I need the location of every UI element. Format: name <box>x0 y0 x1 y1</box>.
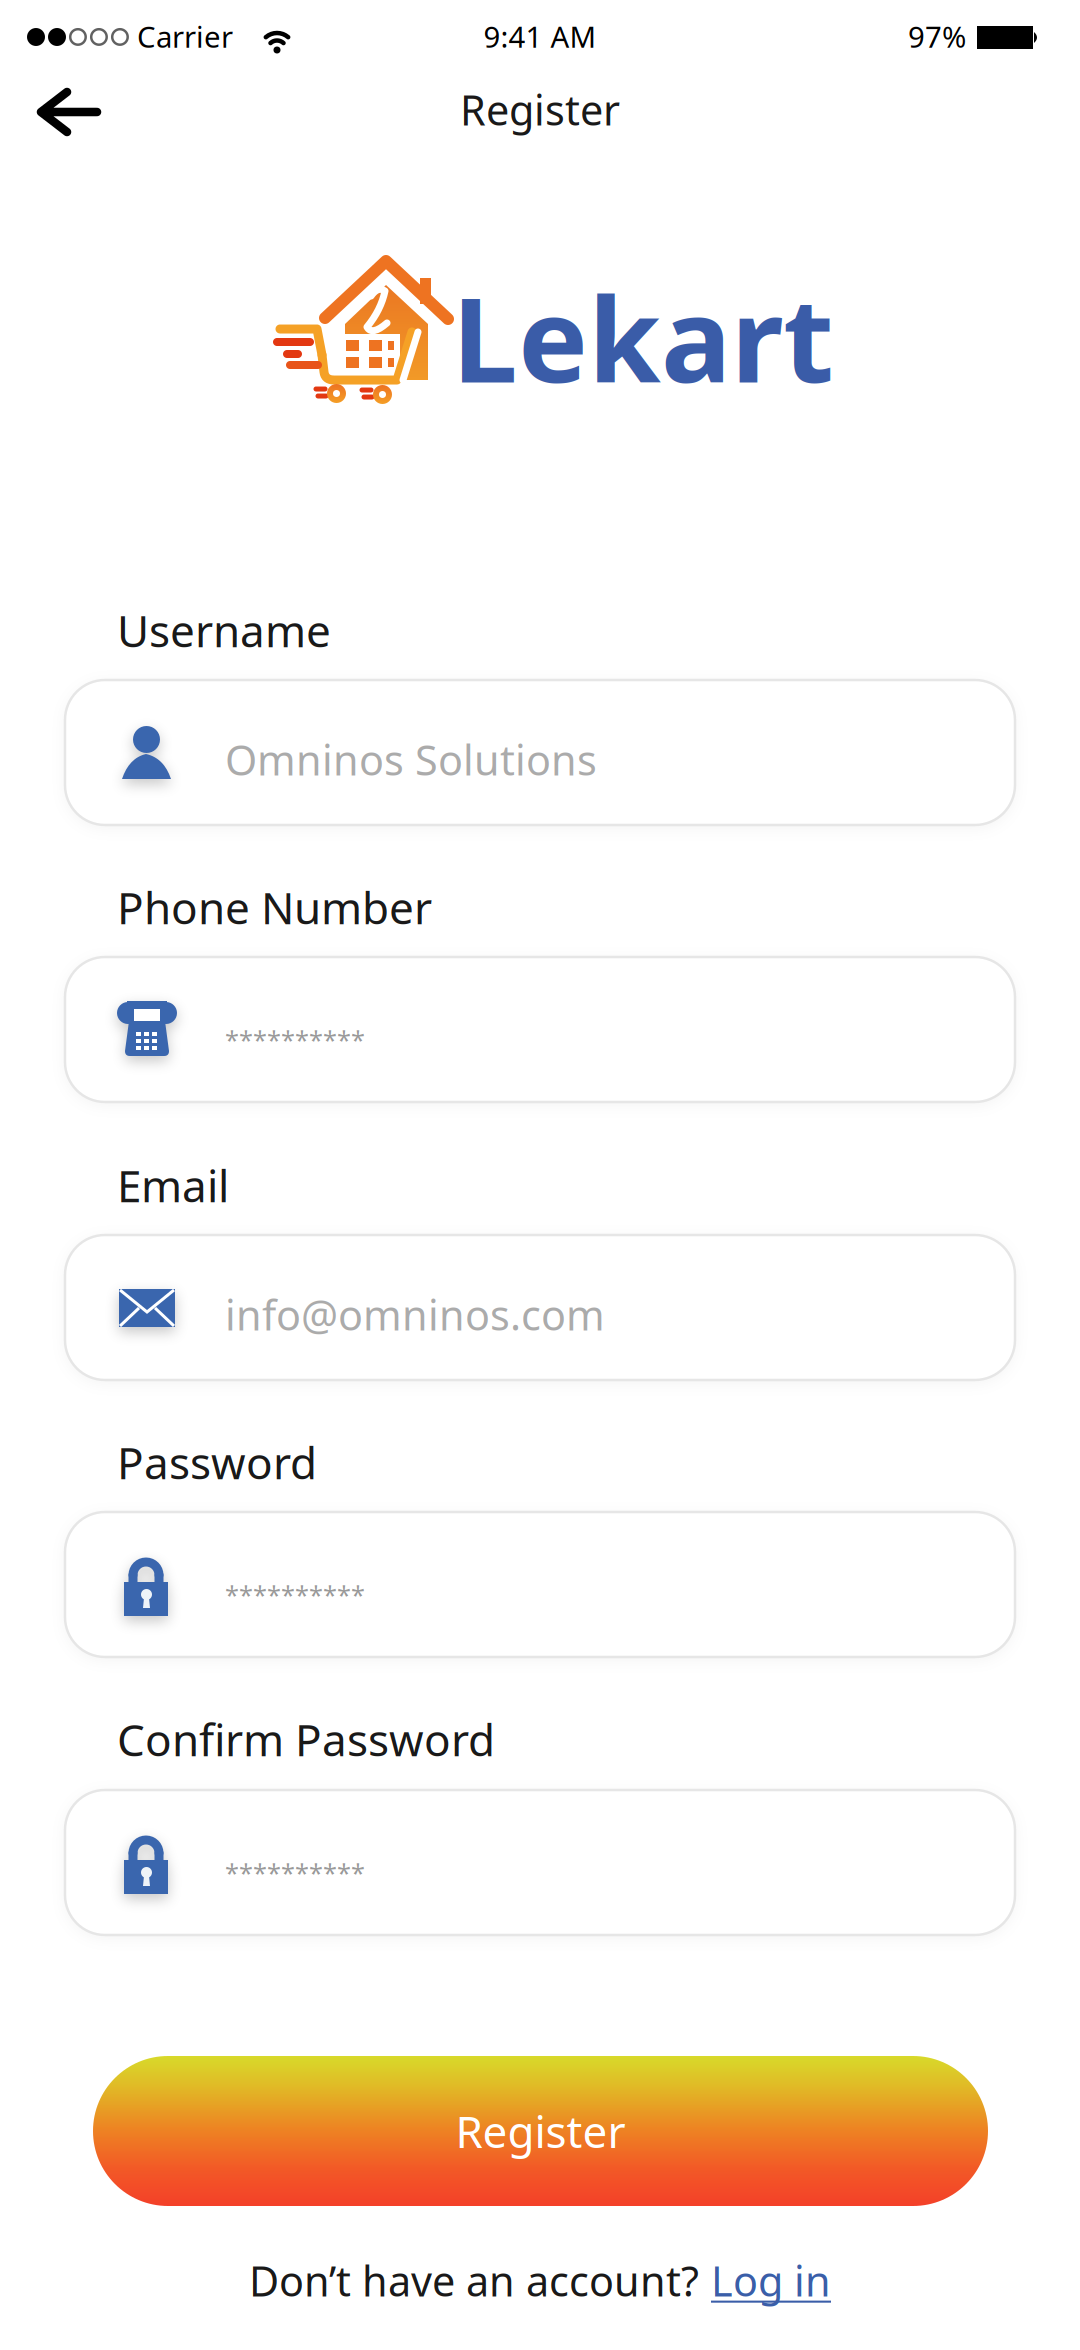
staticText: 9:41 AM <box>483 17 596 56</box>
staticText: Username <box>117 601 331 659</box>
staticText: Phone Number <box>117 878 432 936</box>
staticText: ********** <box>225 1023 365 1056</box>
button[interactable]: Confirm Password <box>65 1790 1015 1935</box>
button[interactable]: Password <box>65 1512 1015 1657</box>
staticText: Omninos Solutions <box>225 732 597 787</box>
staticText: Lekart <box>452 259 834 415</box>
staticText: Carrier <box>137 17 233 56</box>
staticText: 97% <box>908 17 966 56</box>
button[interactable]: Username <box>65 680 1015 825</box>
button[interactable]: Register <box>93 2056 988 2206</box>
staticText: Password <box>117 1433 317 1491</box>
button[interactable]: Email <box>65 1235 1015 1380</box>
button[interactable]: Back <box>39 90 101 134</box>
button[interactable]: Log in <box>711 2253 831 2308</box>
button[interactable]: Phone Number <box>65 957 1015 1102</box>
staticText: Register <box>460 82 620 137</box>
staticText: Log in <box>711 2253 831 2308</box>
staticText: Don’t have an account? <box>249 2253 699 2308</box>
staticText: Register <box>455 2102 625 2160</box>
staticText: Email <box>117 1156 229 1214</box>
staticText: info@omninos.com <box>225 1287 605 1342</box>
staticText: ********** <box>225 1856 365 1889</box>
staticText: Confirm Password <box>117 1710 495 1768</box>
staticText: ********** <box>225 1578 365 1611</box>
